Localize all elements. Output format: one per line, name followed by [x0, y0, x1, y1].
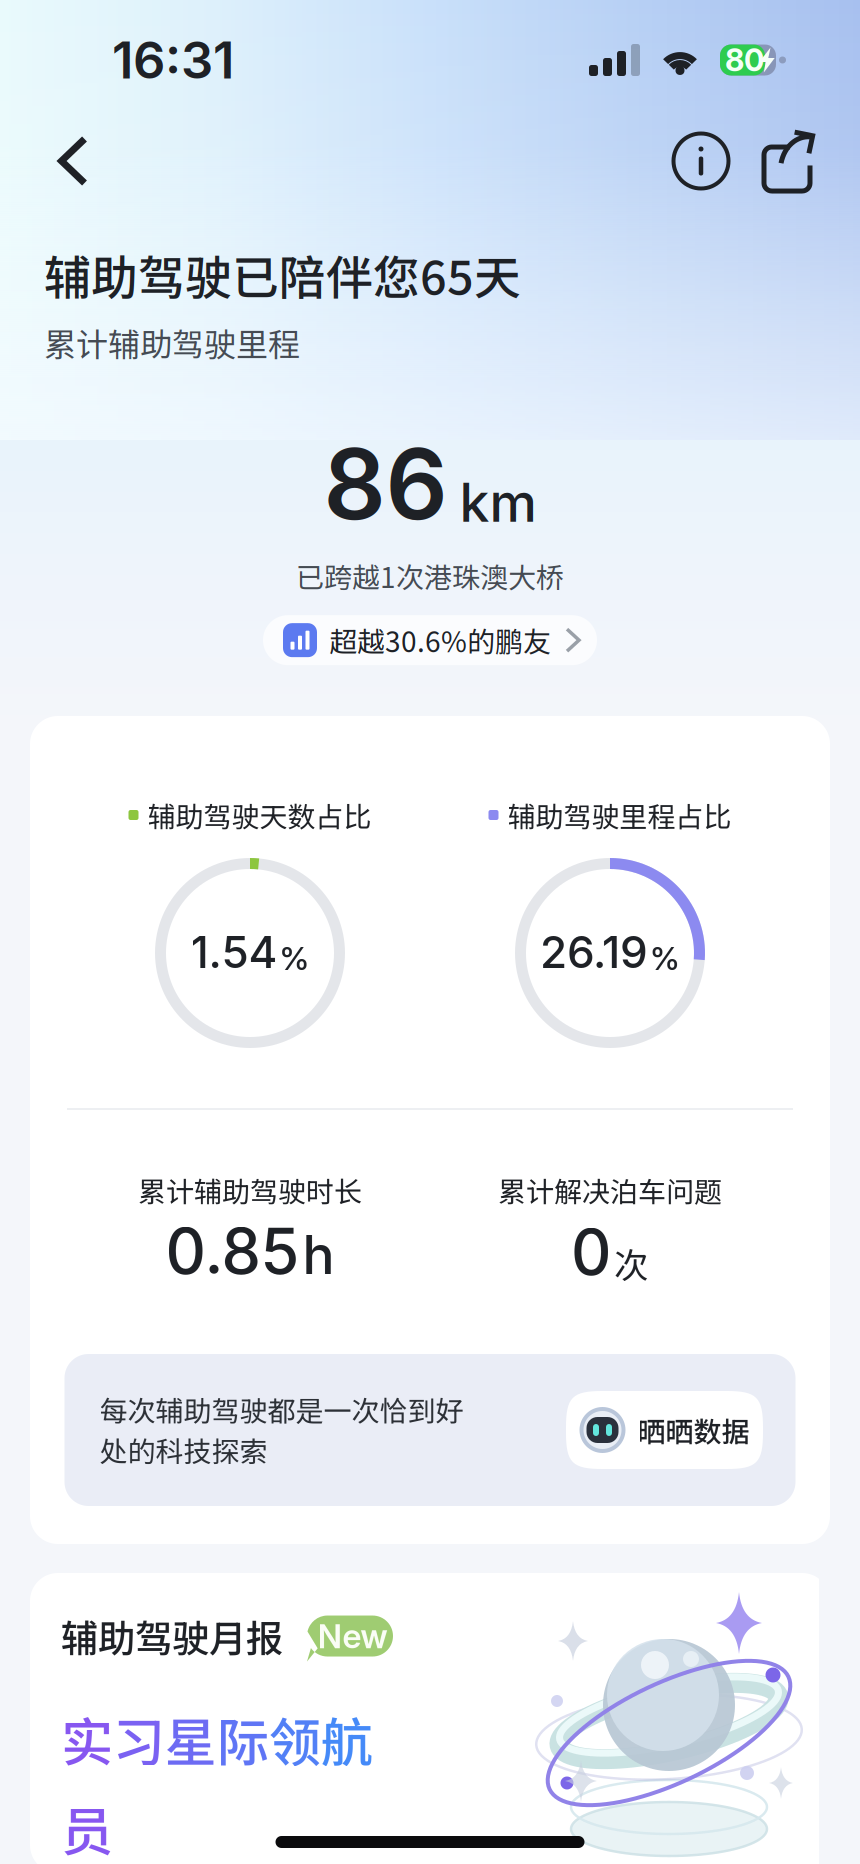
- staticText: 领: [269, 1701, 321, 1776]
- staticText: 员: [61, 1790, 113, 1864]
- staticText: h: [302, 1222, 334, 1287]
- button[interactable]: Share: [748, 122, 826, 200]
- staticText: 16:31: [112, 29, 234, 91]
- staticText: 习: [113, 1701, 165, 1776]
- staticText: 26.19: [540, 925, 648, 979]
- staticText: km: [459, 470, 536, 535]
- staticText: 1.54: [190, 925, 277, 979]
- staticText: 超越30.6%的鹏友: [329, 620, 551, 660]
- staticText: 0: [571, 1214, 611, 1290]
- staticText: 星: [165, 1701, 217, 1776]
- staticText: 晒晒数据: [637, 1410, 749, 1450]
- staticText: 际: [217, 1701, 269, 1776]
- staticText: 累计辅助驾驶时长: [138, 1170, 362, 1210]
- staticText: 处的科技探索: [99, 1429, 267, 1470]
- button[interactable]: Info: [662, 122, 740, 200]
- staticText: %: [279, 939, 309, 978]
- staticText: 86: [323, 425, 447, 543]
- staticText: 累计解决泊车问题: [498, 1170, 722, 1210]
- staticText: 航: [321, 1701, 373, 1776]
- staticText: 80: [725, 41, 764, 78]
- staticText: 实: [61, 1701, 113, 1776]
- staticText: 每次辅助驾驶都是一次恰到好: [99, 1389, 463, 1429]
- button[interactable]: 超越30.6%的鹏友: [263, 615, 597, 665]
- staticText: 辅助驾驶已陪伴您65天: [44, 240, 521, 308]
- staticText: 辅助驾驶天数占比: [147, 795, 371, 835]
- button[interactable]: 晒晒数据: [566, 1391, 763, 1469]
- staticText: 累计辅助驾驶里程: [44, 319, 300, 365]
- staticText: 已跨越1次港珠澳大桥: [296, 556, 564, 596]
- staticText: 0.85: [165, 1213, 299, 1289]
- staticText: New: [317, 1616, 387, 1656]
- staticText: %: [650, 939, 680, 978]
- staticText: 次: [614, 1238, 649, 1288]
- button[interactable]: Back: [34, 122, 112, 200]
- staticText: 辅助驾驶月报: [61, 1609, 283, 1663]
- staticText: 辅助驾驶里程占比: [507, 795, 731, 835]
